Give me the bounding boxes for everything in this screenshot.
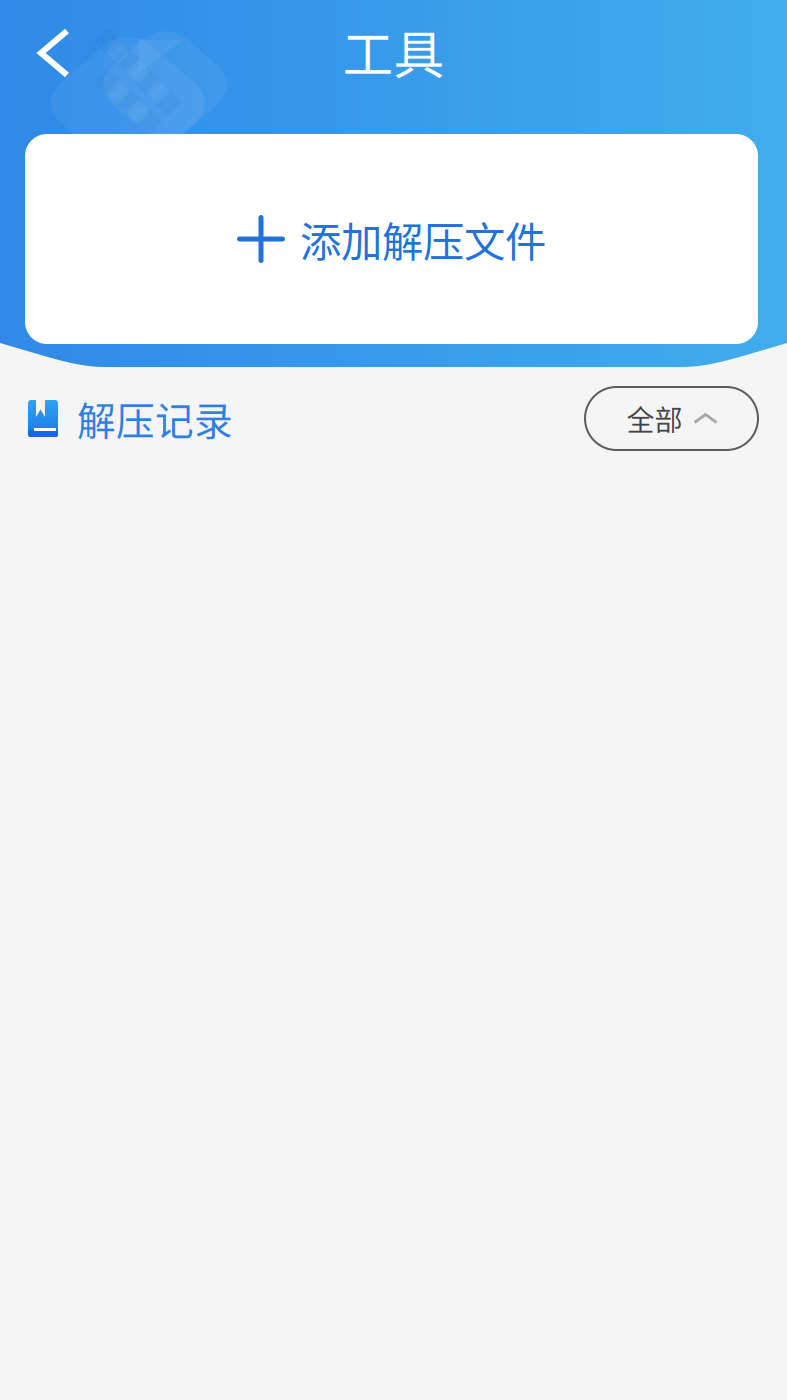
staticText: 工具 [342, 15, 444, 88]
button[interactable]: 全部 [585, 387, 758, 450]
button[interactable]: 添加解压文件 [25, 134, 758, 344]
button[interactable]: Back [27, 17, 81, 89]
staticText: 解压记录 [77, 390, 233, 446]
staticText: 添加解压文件 [300, 209, 546, 269]
staticText: 全部 [626, 398, 682, 439]
